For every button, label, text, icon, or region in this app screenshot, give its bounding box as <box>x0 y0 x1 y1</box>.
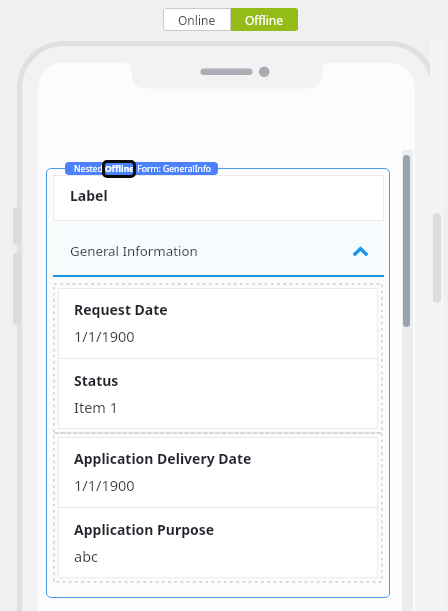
button[interactable]: Offline <box>231 8 298 31</box>
staticText: Offline <box>105 163 135 175</box>
staticText: Status <box>74 371 119 390</box>
button[interactable]: Status <box>58 359 378 429</box>
staticText: General Information <box>70 242 198 260</box>
staticText: abc <box>74 546 99 566</box>
staticText: Request Date <box>74 300 168 319</box>
button[interactable]: Nested <box>65 162 218 175</box>
staticText: 1/1/1900 <box>74 475 135 495</box>
staticText: Application Delivery Date <box>74 449 252 468</box>
button[interactable]: Application Purpose <box>58 508 378 578</box>
staticText: Application Purpose <box>74 520 215 539</box>
staticText: Offline <box>245 12 284 28</box>
button[interactable]: Application Delivery Date <box>58 437 378 507</box>
button[interactable]: Request Date <box>58 288 378 358</box>
other: Collapse section <box>352 247 369 257</box>
staticText: Form: GeneralInfo <box>135 163 212 175</box>
staticText: Nested <box>74 163 105 175</box>
staticText: Online <box>178 12 216 28</box>
button[interactable]: General Information <box>53 223 384 277</box>
staticText: 1/1/1900 <box>74 326 135 346</box>
staticText: Label <box>70 186 108 205</box>
staticText: Item 1 <box>74 397 118 417</box>
button[interactable]: Online <box>163 8 231 31</box>
